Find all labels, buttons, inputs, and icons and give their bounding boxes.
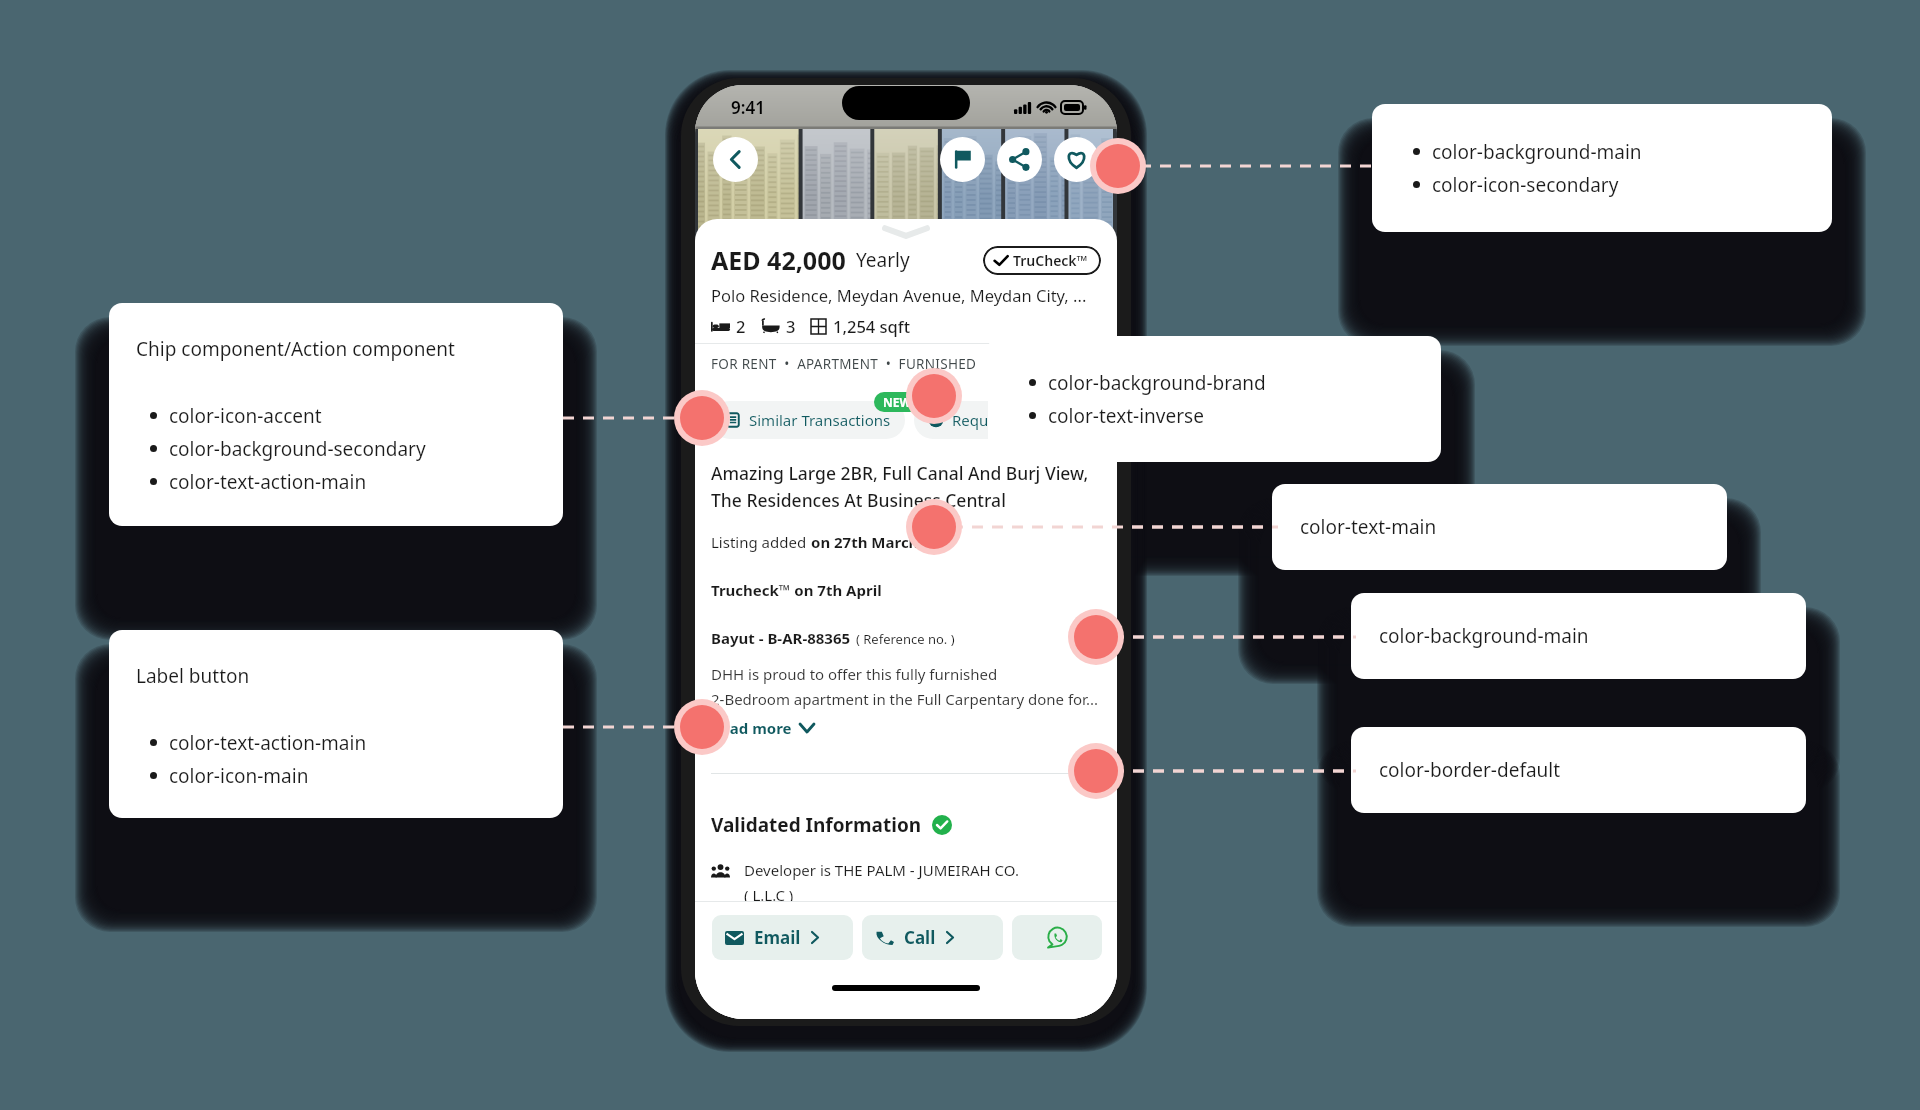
staticText: color-border-default [1379, 757, 1561, 783]
staticText: Call [904, 926, 936, 949]
staticText: Yearly [856, 247, 910, 273]
staticText: color-background-main [1432, 139, 1642, 165]
staticText: color-background-main [1379, 623, 1589, 649]
button[interactable]: Read more [711, 718, 814, 738]
button[interactable]: Request Video [914, 401, 1067, 439]
staticText: Amazing Large 2BR, Full Canal And Burj V… [711, 461, 1089, 512]
button[interactable]: color-background-main [1372, 104, 1832, 232]
staticText: 9:41 [731, 96, 765, 119]
staticText: color-background-brand [1048, 370, 1266, 396]
button[interactable]: Report listing [940, 137, 985, 182]
staticText: FOR RENT • APARTMENT • FURNISHED [711, 355, 977, 373]
staticText: color-text-action-main [169, 730, 367, 756]
staticText: Polo Residence, Meydan Avenue, Meydan Ci… [711, 284, 1087, 306]
staticText: color-icon-accent [169, 403, 322, 429]
staticText: 2 [736, 315, 746, 337]
button[interactable]: Email [712, 915, 853, 960]
button[interactable]: Label button [109, 630, 563, 818]
button[interactable]: Save to favourites [1054, 137, 1099, 182]
button[interactable]: WhatsApp [1012, 915, 1102, 960]
staticText: TruCheck™ [1013, 251, 1088, 270]
staticText: ( Reference no. ) [856, 630, 955, 648]
staticText: DHH is proud to offer this fully furnish… [711, 664, 1098, 709]
staticText: Developer is THE PALM - JUMEIRAH CO. ( L… [744, 860, 1019, 905]
staticText: Request Video [952, 410, 1053, 430]
staticText: color-icon-secondary [1432, 172, 1619, 198]
staticText: Trucheck™ on 7th April [711, 580, 882, 600]
staticText: 3 [786, 315, 796, 337]
button[interactable]: color-border-default [1351, 727, 1806, 813]
staticText: 1,254 sqft [833, 315, 911, 337]
staticText: Email [754, 926, 801, 949]
staticText: Chip component/Action component [136, 336, 455, 362]
button[interactable]: Chip component/Action component [109, 303, 563, 526]
button[interactable]: Back [713, 137, 758, 182]
staticText: Label button [136, 663, 250, 689]
staticText: Listing added [711, 532, 811, 552]
button[interactable]: color-background-brand [988, 336, 1441, 462]
button[interactable]: color-background-main [1351, 593, 1806, 679]
button[interactable]: Share [997, 137, 1042, 182]
staticText: color-text-main [1300, 514, 1437, 540]
staticText: Validated Information [711, 812, 922, 838]
staticText: color-text-inverse [1048, 403, 1204, 429]
staticText: color-background-secondary [169, 436, 426, 462]
staticText: color-icon-main [169, 763, 309, 789]
staticText: Similar Transactions [749, 410, 891, 430]
staticText: AED 42,000 [711, 243, 846, 277]
staticText: on 27th March [811, 532, 919, 552]
button[interactable]: TruCheck™ [983, 246, 1101, 275]
staticText: Read more [711, 718, 792, 738]
button[interactable]: Call [862, 915, 1003, 960]
staticText: NEW [883, 394, 912, 410]
staticText: color-text-action-main [169, 469, 367, 495]
staticText: Bayut - B-AR-88365 [711, 628, 851, 648]
button[interactable]: Similar Transactions [711, 401, 905, 439]
button[interactable]: color-text-main [1272, 484, 1727, 570]
